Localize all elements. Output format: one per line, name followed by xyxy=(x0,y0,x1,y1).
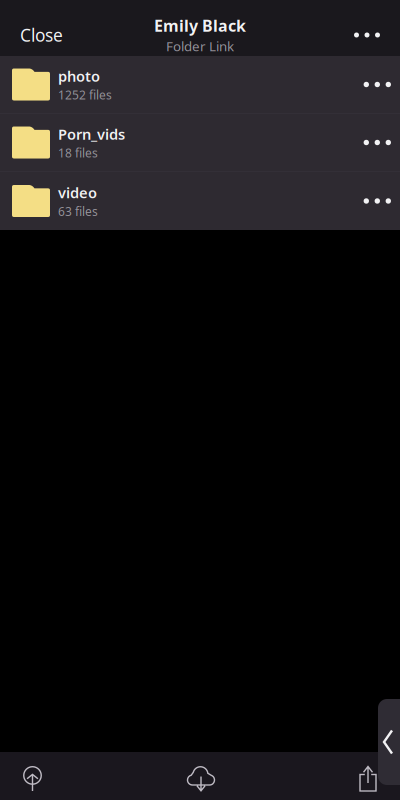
button[interactable]: photo xyxy=(0,56,400,114)
staticText: Folder Link xyxy=(166,37,234,55)
staticText: Close xyxy=(20,23,63,46)
staticText: Emily Black xyxy=(154,15,246,36)
staticText: Porn_vids xyxy=(58,124,125,144)
staticText: video xyxy=(58,183,97,202)
button[interactable]: Download xyxy=(167,752,234,800)
button[interactable]: Porn_vids xyxy=(0,114,400,172)
staticText: photo xyxy=(58,66,100,86)
staticText: 63 files xyxy=(58,203,98,219)
button[interactable]: More options xyxy=(340,11,400,44)
button[interactable]: Upload xyxy=(0,752,63,800)
staticText: 18 files xyxy=(58,145,98,161)
button[interactable]: Share xyxy=(339,752,400,800)
button[interactable]: Open side panel xyxy=(368,699,400,785)
staticText: 1252 files xyxy=(58,87,112,103)
button[interactable]: video xyxy=(0,172,400,230)
button[interactable]: Close xyxy=(0,5,77,50)
